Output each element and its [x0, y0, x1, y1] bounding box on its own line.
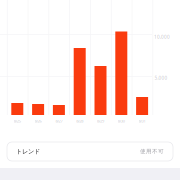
- staticText: 8/25: [14, 118, 21, 124]
- staticText: 8/27: [55, 118, 62, 124]
- staticText: 5,000: [154, 75, 167, 81]
- staticText: 使用不可: [140, 148, 164, 155]
- staticText: 8/29: [97, 118, 104, 124]
- button[interactable]: トレンド: [7, 142, 173, 161]
- staticText: トレンド: [16, 148, 40, 155]
- staticText: 8/28: [76, 118, 83, 124]
- staticText: 10,000: [154, 34, 170, 40]
- staticText: 8/31: [139, 118, 146, 124]
- staticText: 8/30: [118, 118, 125, 124]
- staticText: 8/26: [35, 118, 42, 124]
